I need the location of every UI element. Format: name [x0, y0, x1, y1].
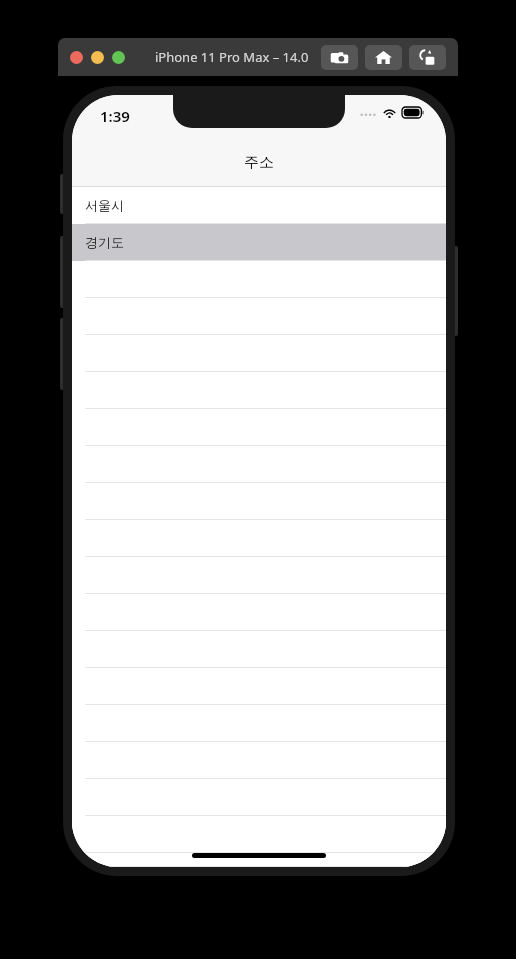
button[interactable] [72, 557, 446, 594]
staticText: 경기도 [85, 234, 124, 250]
button[interactable]: Zoom [112, 51, 125, 64]
button[interactable]: Home [365, 45, 402, 70]
button[interactable] [72, 594, 446, 631]
button[interactable] [72, 261, 446, 298]
button[interactable] [72, 668, 446, 705]
button[interactable] [72, 631, 446, 668]
button[interactable] [72, 705, 446, 742]
button[interactable]: Rotate [409, 45, 446, 70]
button[interactable] [72, 742, 446, 779]
button[interactable]: Screenshot [321, 45, 358, 70]
button[interactable] [72, 372, 446, 409]
staticText: 1:39 [100, 106, 130, 126]
button[interactable] [72, 335, 446, 372]
button[interactable] [72, 446, 446, 483]
button[interactable]: 경기도 [72, 224, 446, 261]
staticText: iPhone 11 Pro Max – 14.0 [155, 48, 309, 66]
button[interactable] [72, 520, 446, 557]
staticText: 서울시 [85, 197, 124, 213]
button[interactable] [72, 483, 446, 520]
button[interactable] [72, 853, 446, 867]
button[interactable]: Close [70, 51, 83, 64]
button[interactable]: Minimize [91, 51, 104, 64]
button[interactable]: 서울시 [72, 187, 446, 224]
button[interactable] [72, 409, 446, 446]
button[interactable] [72, 779, 446, 816]
button[interactable] [72, 816, 446, 853]
staticText: 주소 [244, 153, 274, 172]
button[interactable] [72, 298, 446, 335]
